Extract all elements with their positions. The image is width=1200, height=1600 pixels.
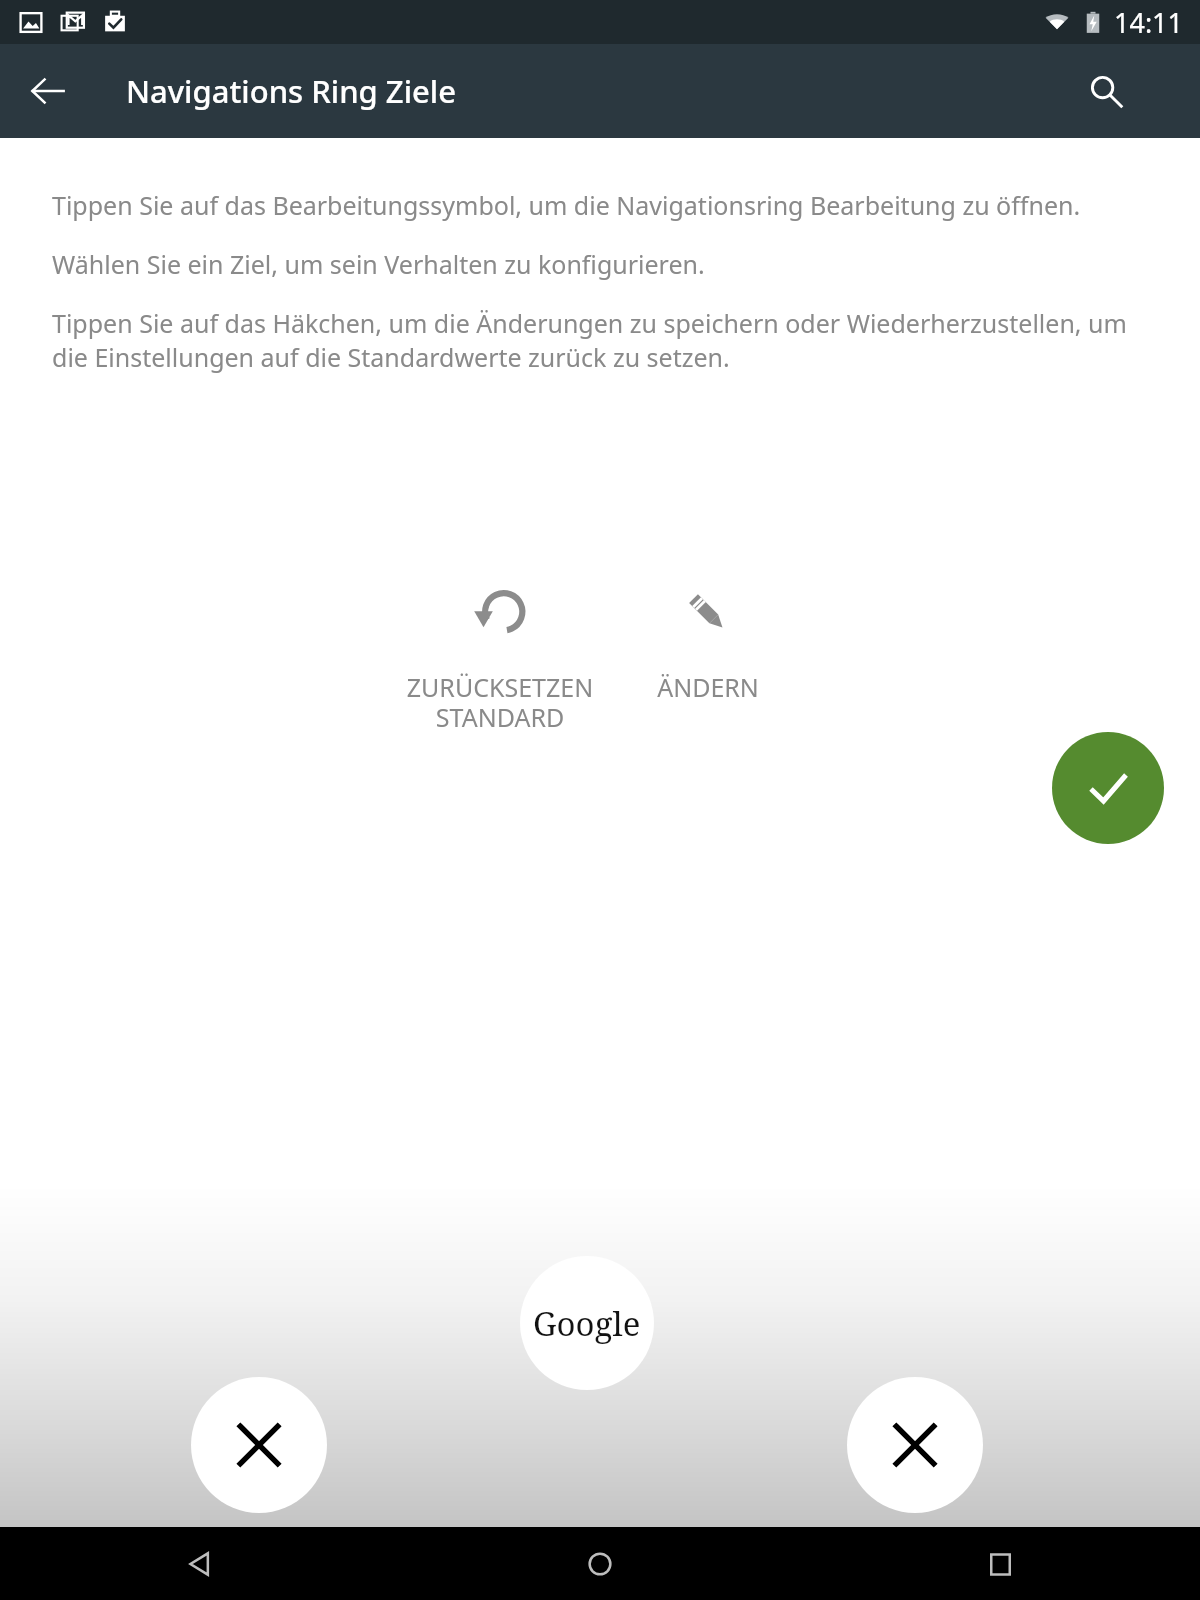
button[interactable]: Startbildschirm bbox=[567, 1531, 633, 1597]
staticText: Google bbox=[533, 1301, 641, 1346]
button[interactable]: Speichern bbox=[1052, 732, 1164, 844]
button[interactable]: Google bbox=[520, 1256, 654, 1390]
staticText: Navigations Ring Ziele bbox=[126, 70, 456, 112]
button[interactable]: Ändern bbox=[608, 582, 808, 704]
staticText: Tippen Sie auf das Bearbeitungssymbol, u… bbox=[52, 188, 1081, 222]
staticText: 14:11 bbox=[1114, 4, 1184, 41]
button[interactable]: Zurücksetzen Standard bbox=[400, 582, 600, 735]
button[interactable]: Schließen rechts bbox=[847, 1377, 983, 1513]
staticText: Wählen Sie ein Ziel, um sein Verhalten z… bbox=[52, 247, 705, 281]
button[interactable]: Back bbox=[18, 61, 78, 121]
staticText: Tippen Sie auf das Häkchen, um die Änder… bbox=[52, 306, 1148, 374]
button[interactable]: Schließen links bbox=[191, 1377, 327, 1513]
button[interactable]: Search bbox=[1074, 59, 1138, 123]
button[interactable]: Übersicht bbox=[967, 1531, 1033, 1597]
staticText: ÄNDERN bbox=[608, 670, 808, 704]
staticText: ZURÜCKSETZEN STANDARD bbox=[400, 670, 600, 735]
button[interactable]: Zurück bbox=[167, 1531, 233, 1597]
